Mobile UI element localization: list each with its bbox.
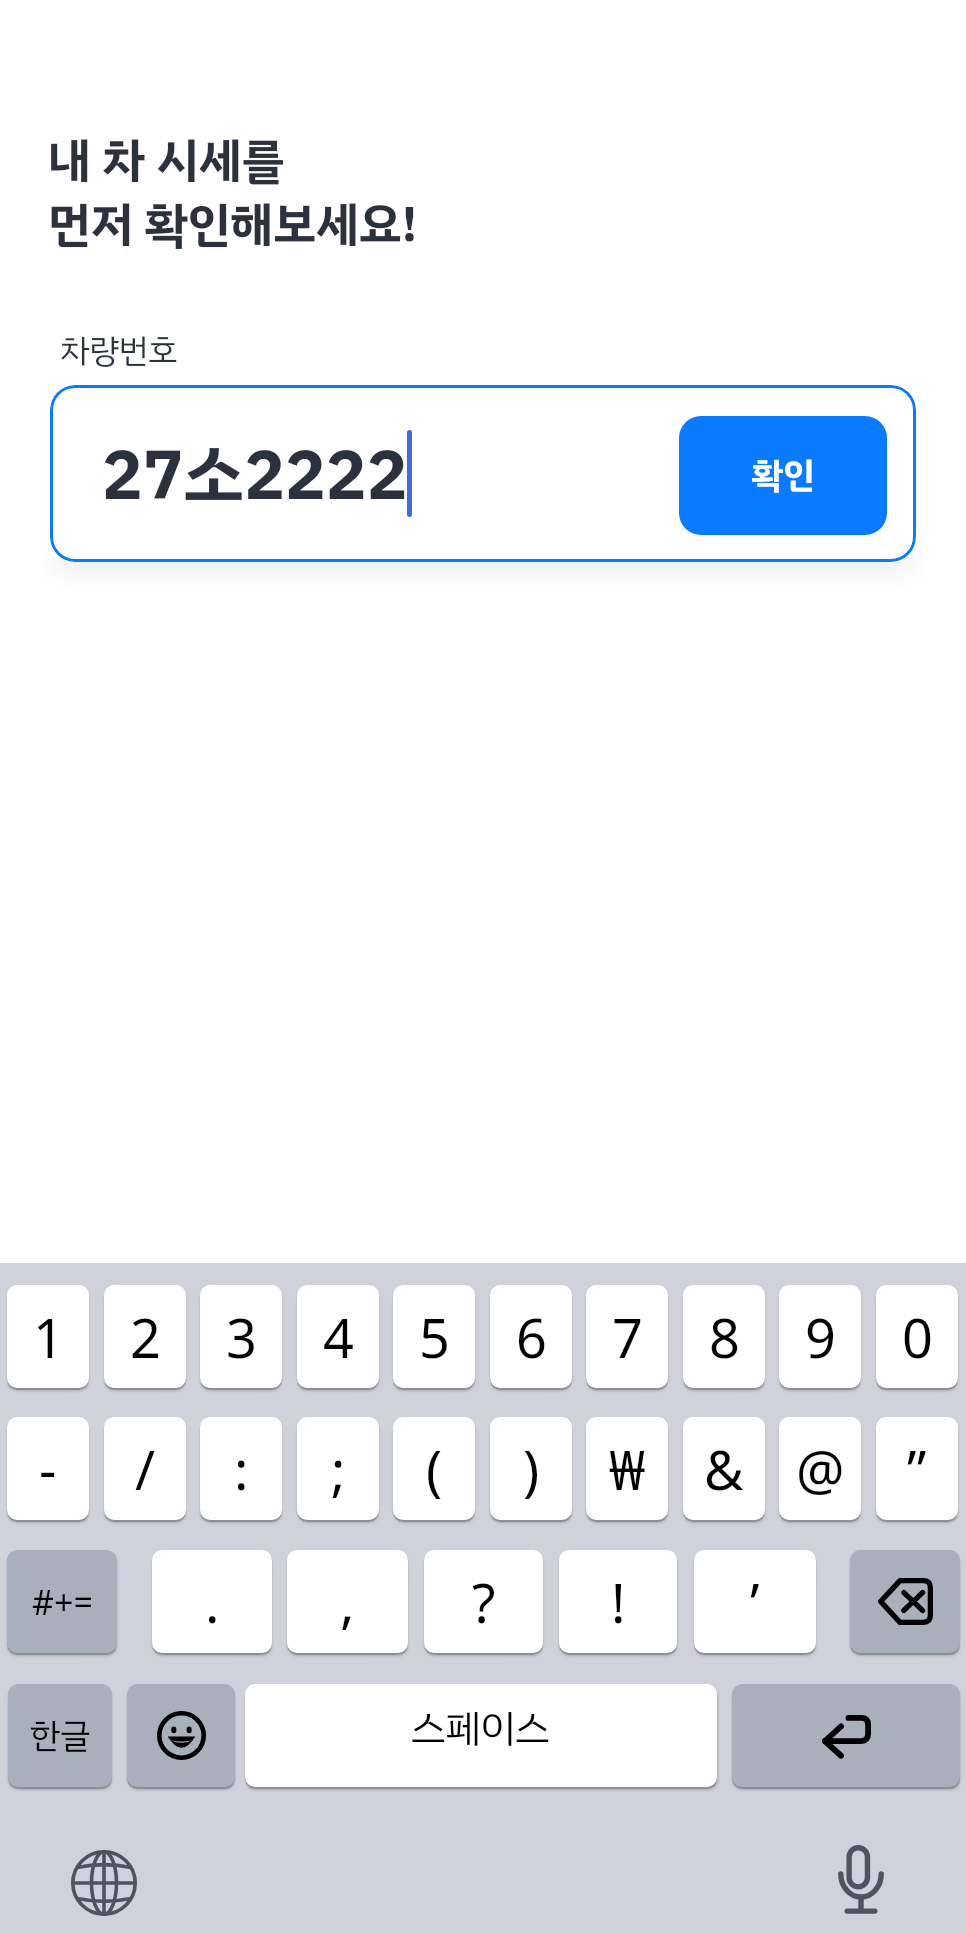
staticText: 0 (902, 1300, 933, 1374)
staticText: 4 (323, 1300, 354, 1374)
staticText: & (704, 1432, 744, 1506)
staticText: 27소2222 (102, 425, 408, 527)
button[interactable]: . (152, 1550, 272, 1653)
staticText: - (39, 1432, 57, 1506)
staticText: : (234, 1432, 249, 1506)
button[interactable]: 6 (490, 1285, 572, 1388)
button[interactable]: Return (732, 1684, 960, 1787)
staticText: ” (907, 1432, 927, 1506)
button[interactable]: ! (559, 1550, 677, 1653)
button[interactable]: : (200, 1417, 282, 1520)
button[interactable]: 5 (393, 1285, 475, 1388)
button[interactable]: ₩ (586, 1417, 668, 1520)
staticText: 스페이스 (411, 1700, 551, 1759)
staticText: 5 (419, 1300, 450, 1374)
button[interactable]: 27소2222 (50, 385, 916, 562)
button[interactable]: 9 (779, 1285, 861, 1388)
button[interactable]: & (683, 1417, 765, 1520)
button[interactable]: 8 (683, 1285, 765, 1388)
staticText: 6 (516, 1300, 547, 1374)
button[interactable]: ” (876, 1417, 958, 1520)
button[interactable]: Backspace (850, 1550, 960, 1653)
staticText: ( (426, 1432, 443, 1506)
staticText: / (135, 1432, 156, 1506)
staticText: ! (611, 1565, 626, 1639)
button[interactable]: 3 (200, 1285, 282, 1388)
button[interactable]: Voice input (838, 1845, 884, 1914)
staticText: , (340, 1565, 355, 1639)
staticText: ; (331, 1432, 346, 1506)
staticText: 1 (33, 1300, 64, 1374)
button[interactable]: Emoji (127, 1684, 235, 1787)
button[interactable]: - (7, 1417, 89, 1520)
button[interactable]: 4 (297, 1285, 379, 1388)
button[interactable]: 스페이스 (245, 1684, 717, 1787)
button[interactable]: 2 (104, 1285, 186, 1388)
button[interactable]: 0 (876, 1285, 958, 1388)
staticText: . (205, 1565, 220, 1639)
button[interactable]: @ (779, 1417, 861, 1520)
staticText: ₩ (609, 1432, 646, 1506)
button[interactable]: / (104, 1417, 186, 1520)
button[interactable]: 1 (7, 1285, 89, 1388)
staticText: ? (472, 1565, 496, 1639)
button[interactable]: ( (393, 1417, 475, 1520)
staticText: 차량번호 (60, 326, 178, 376)
staticText: 한글 (30, 1710, 91, 1761)
staticText: ’ (750, 1565, 760, 1639)
staticText: 7 (612, 1300, 643, 1374)
staticText: 내 차 시세를 먼저 확인해보세요! (48, 125, 418, 261)
staticText: 3 (226, 1300, 257, 1374)
staticText: 8 (709, 1300, 740, 1374)
button[interactable]: ’ (694, 1550, 816, 1653)
staticText: 확인 (752, 449, 815, 502)
button[interactable]: ; (297, 1417, 379, 1520)
button[interactable]: , (287, 1550, 408, 1653)
button[interactable]: Change keyboard language (71, 1850, 137, 1916)
button[interactable]: 7 (586, 1285, 668, 1388)
button[interactable]: #+= (7, 1550, 117, 1653)
staticText: 9 (805, 1300, 836, 1374)
staticText: @ (796, 1432, 845, 1506)
button[interactable]: 확인 (679, 416, 887, 535)
staticText: ) (523, 1432, 540, 1506)
button[interactable]: ? (424, 1550, 543, 1653)
button[interactable]: 한글 (8, 1684, 112, 1787)
staticText: #+= (32, 1579, 93, 1625)
button[interactable]: ) (490, 1417, 572, 1520)
staticText: 2 (130, 1300, 161, 1374)
